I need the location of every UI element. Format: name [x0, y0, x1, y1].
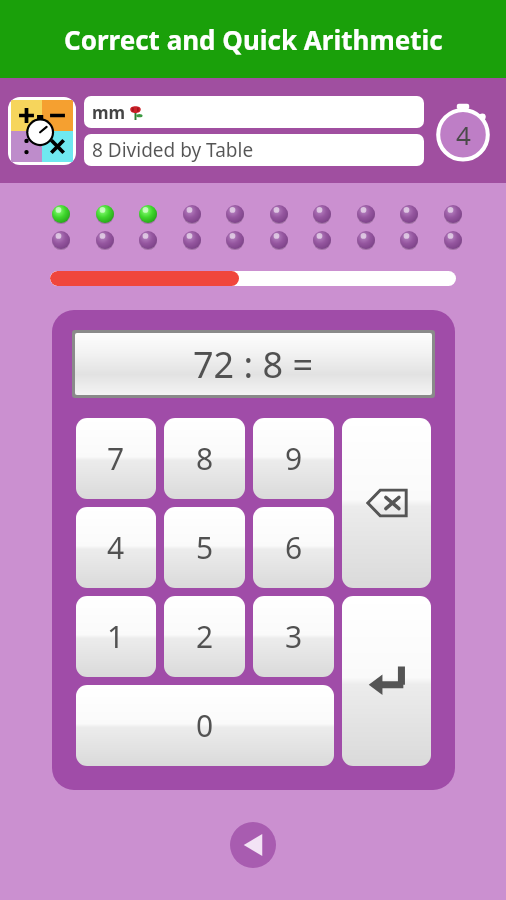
button[interactable]: 9: [253, 418, 334, 499]
staticText: 8 Divided by Table: [92, 137, 254, 163]
staticText: 1: [107, 616, 125, 657]
button[interactable]: Back: [230, 822, 276, 868]
button[interactable]: 7: [76, 418, 156, 499]
staticText: 7: [107, 438, 125, 479]
staticText: 4: [107, 527, 125, 568]
staticText: 0: [196, 705, 214, 746]
button[interactable]: mm: [84, 96, 424, 128]
button[interactable]: 1: [76, 596, 156, 677]
button[interactable]: 0: [76, 685, 334, 766]
staticText: 5: [196, 527, 214, 568]
button[interactable]: Backspace: [342, 418, 431, 588]
button[interactable]: 4: [76, 507, 156, 588]
button[interactable]: 5: [164, 507, 245, 588]
staticText: Correct and Quick Arithmetic: [64, 22, 443, 57]
staticText: 4: [456, 117, 471, 152]
staticText: 9: [285, 438, 303, 479]
button[interactable]: 2: [164, 596, 245, 677]
button[interactable]: 3: [253, 596, 334, 677]
button[interactable]: 6: [253, 507, 334, 588]
staticText: 6: [285, 527, 303, 568]
staticText: 8: [196, 438, 214, 479]
button[interactable]: App icon: [11, 100, 73, 162]
staticText: 3: [285, 616, 303, 657]
button[interactable]: 8 Divided by Table: [84, 134, 424, 166]
button[interactable]: 8: [164, 418, 245, 499]
staticText: 2: [196, 616, 214, 657]
staticText: mm: [92, 101, 126, 124]
staticText: 72 : 8 =: [193, 340, 314, 389]
button[interactable]: Enter: [342, 596, 431, 766]
